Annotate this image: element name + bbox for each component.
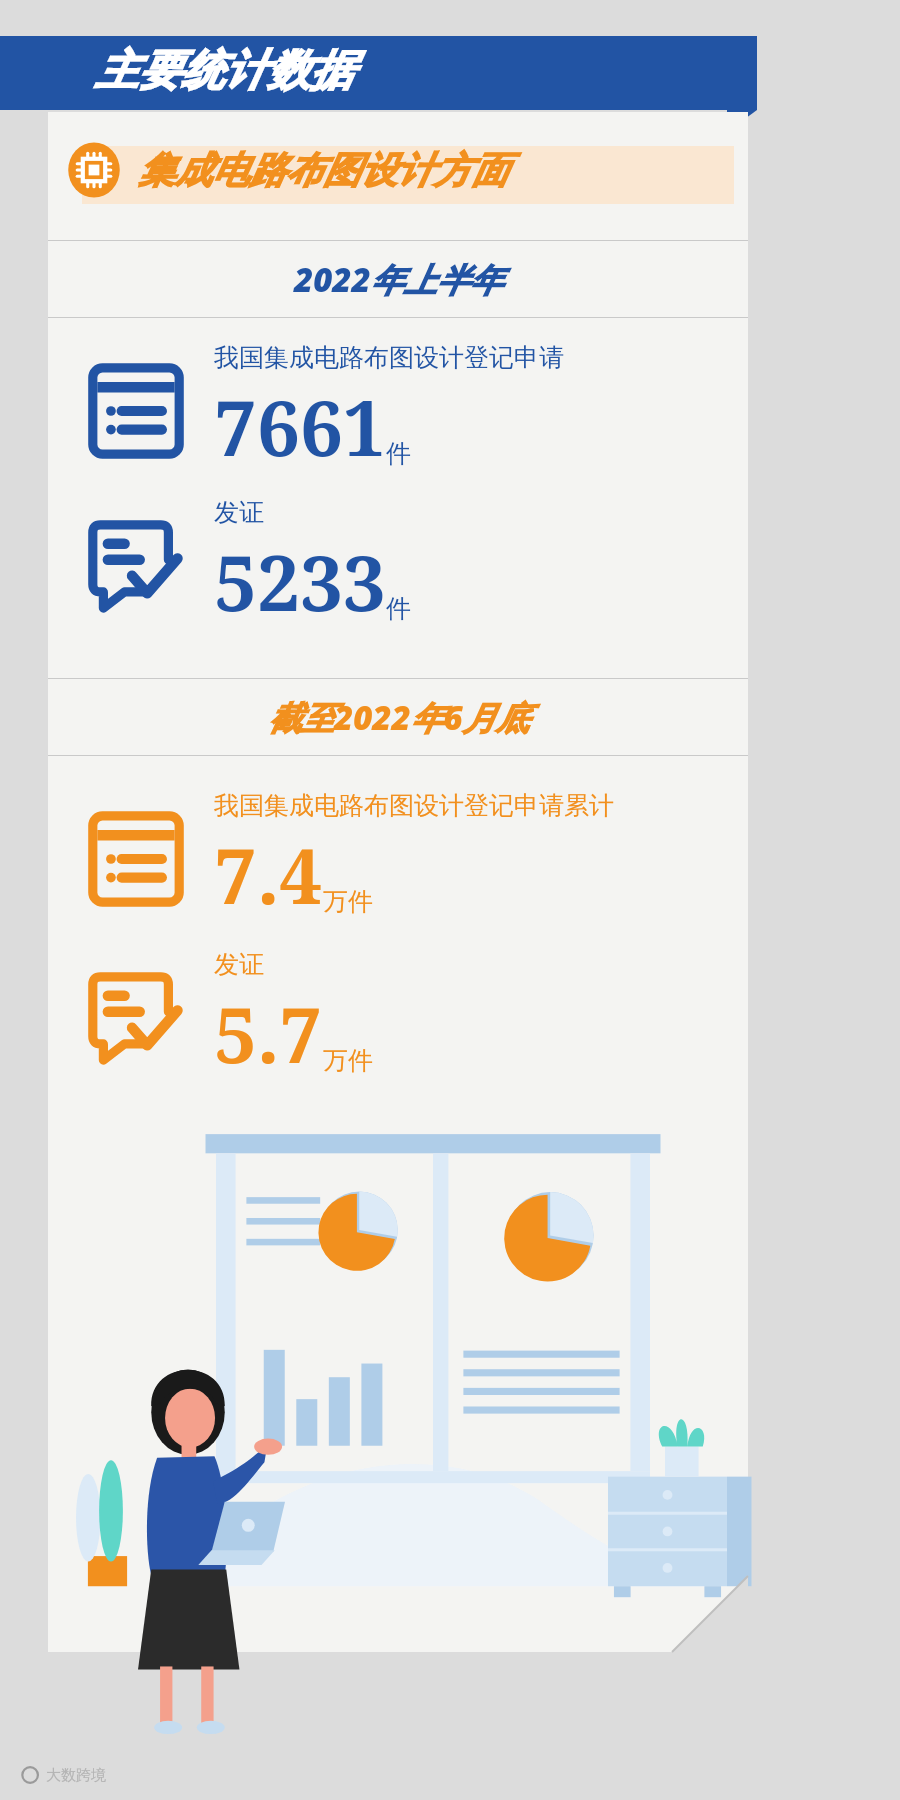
other: Registration — [82, 357, 190, 465]
staticText: 我国集成电路布图设计登记申请 — [214, 342, 564, 373]
staticText: 2022年上半年 — [294, 257, 503, 302]
button[interactable]: Registration — [82, 342, 748, 479]
staticText: 发证 — [214, 949, 264, 980]
button[interactable]: 截至2022年6月底 — [48, 679, 748, 755]
staticText: 我国集成电路布图设计登记申请累计 — [214, 790, 614, 821]
button[interactable]: Registration — [82, 790, 748, 927]
button[interactable]: Chip — [66, 140, 748, 200]
button[interactable]: 2022年上半年 — [48, 241, 748, 317]
staticText: 截至2022年6月底 — [268, 695, 529, 740]
staticText: 主要统计数据 — [95, 44, 353, 98]
staticText: 7.4 — [214, 823, 323, 927]
button[interactable]: 主要统计数据 — [0, 36, 757, 110]
staticText: 大数跨境 — [46, 1766, 106, 1785]
staticText: 5.7 — [214, 982, 323, 1086]
button[interactable]: Certificate — [82, 949, 748, 1086]
staticText: 集成电路布图设计方面 — [138, 147, 508, 194]
staticText: 发证 — [214, 497, 264, 528]
other: Certificate — [82, 512, 190, 620]
staticText: 7661 — [214, 375, 386, 479]
staticText: 5233 — [214, 530, 386, 634]
other: Registration — [82, 805, 190, 913]
button[interactable]: Certificate — [82, 497, 748, 634]
staticText: 件 — [386, 438, 411, 469]
other: Certificate — [82, 964, 190, 1072]
other: Chip — [66, 140, 122, 200]
staticText: 万件 — [323, 886, 373, 917]
staticText: 件 — [386, 593, 411, 624]
staticText: 万件 — [323, 1045, 373, 1076]
